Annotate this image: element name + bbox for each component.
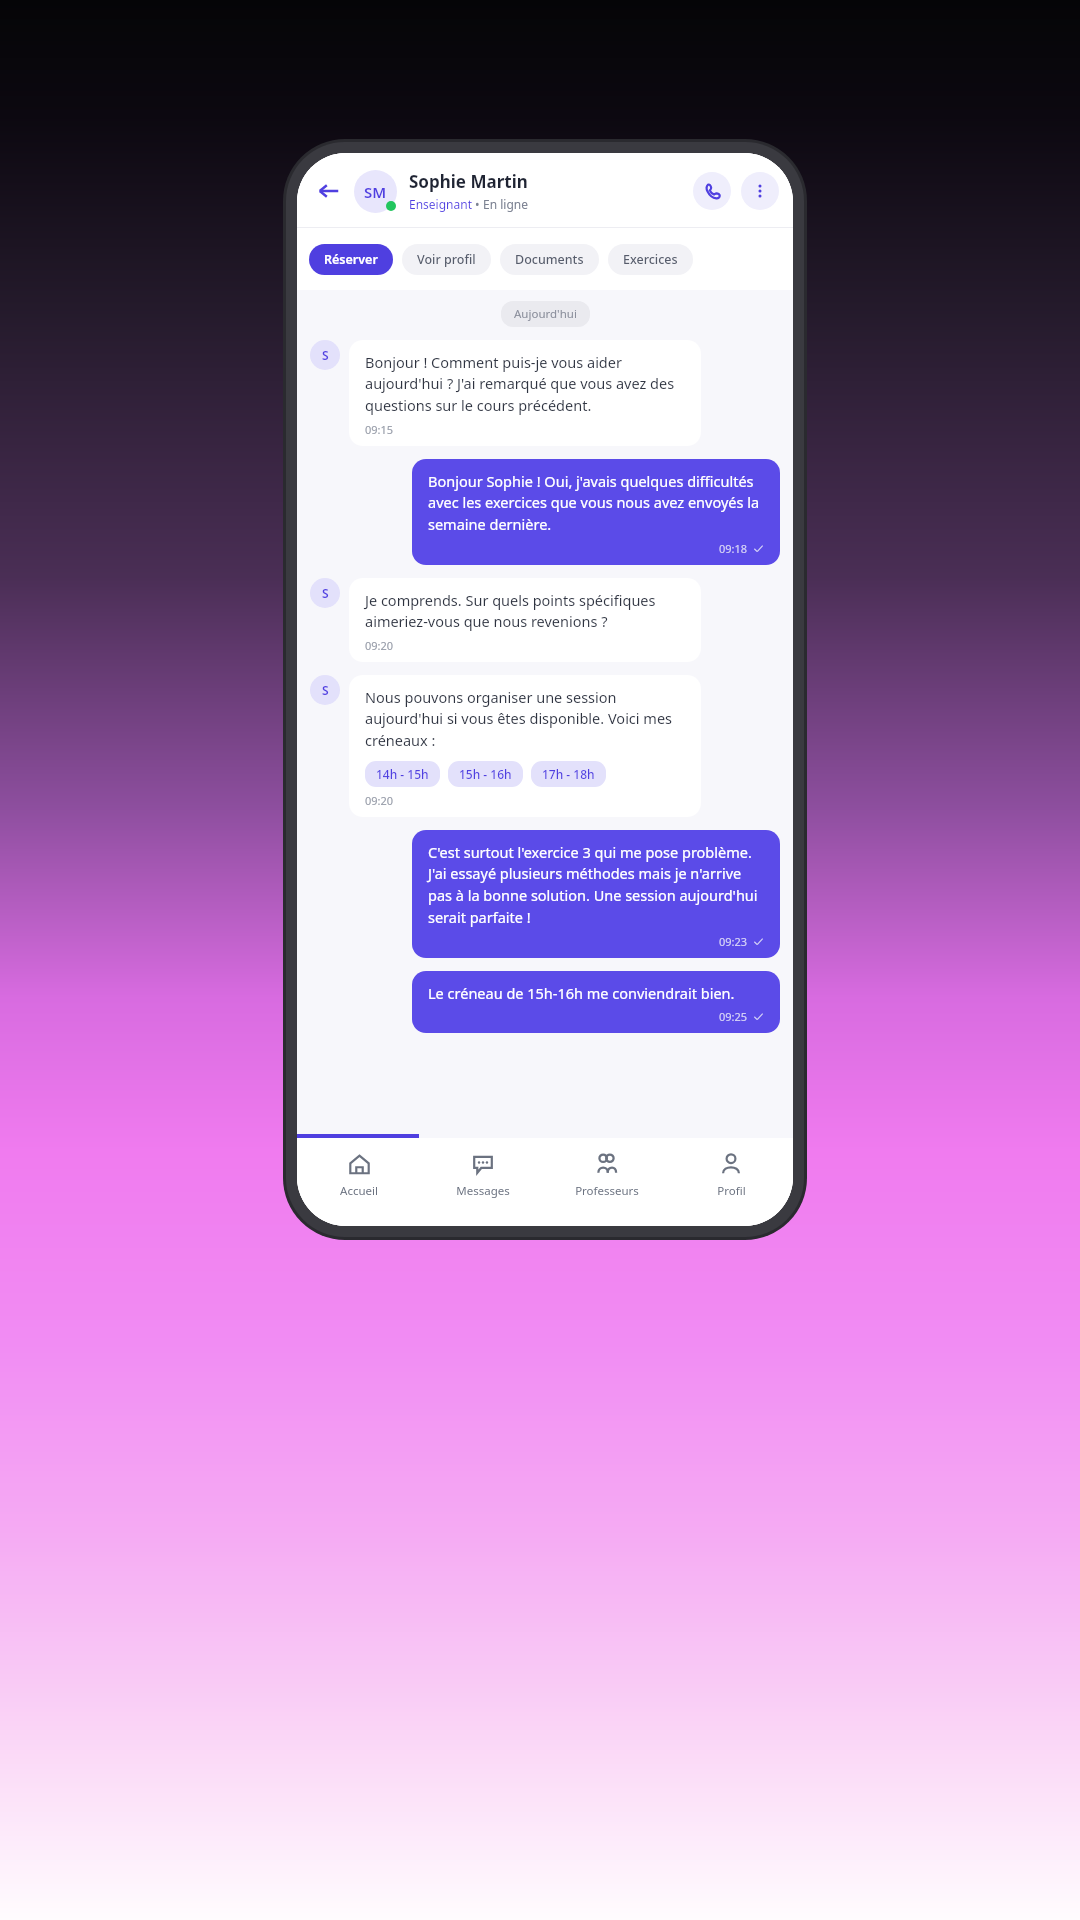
staticText: Aujourd'hui xyxy=(514,306,577,322)
button[interactable]: Professeurs xyxy=(545,1138,669,1226)
staticText: Exercices xyxy=(623,251,678,268)
staticText: S xyxy=(322,585,329,601)
staticText: Bonjour Sophie ! Oui, j'avais quelques d… xyxy=(428,471,764,535)
button[interactable]: Messages xyxy=(421,1138,545,1226)
staticText: Enseignant xyxy=(409,196,472,212)
button[interactable]: Call xyxy=(693,172,731,210)
button[interactable]: Le créneau de 15h-16h me conviendrait bi… xyxy=(412,971,780,1033)
staticText: 09:18 xyxy=(719,541,748,556)
button[interactable]: Voir profil xyxy=(402,244,491,275)
staticText: Voir profil xyxy=(417,251,476,268)
staticText: S xyxy=(322,682,329,698)
staticText: 09:20 xyxy=(365,638,394,653)
button[interactable]: 17h - 18h xyxy=(531,761,606,787)
staticText: 09:20 xyxy=(365,793,394,808)
button[interactable]: 15h - 16h xyxy=(448,761,523,787)
staticText: Je comprends. Sur quels points spécifiqu… xyxy=(365,590,685,632)
button[interactable]: Réserver xyxy=(309,244,393,275)
button[interactable]: Accueil xyxy=(297,1138,421,1226)
staticText: SM xyxy=(364,182,387,202)
button[interactable]: Nous pouvons organiser une session aujou… xyxy=(349,675,701,817)
staticText: En ligne xyxy=(483,196,528,212)
staticText: 14h - 15h xyxy=(376,766,429,782)
button[interactable]: C'est surtout l'exercice 3 qui me pose p… xyxy=(412,830,780,958)
staticText: 09:15 xyxy=(365,422,394,437)
button[interactable]: Je comprends. Sur quels points spécifiqu… xyxy=(349,578,701,662)
button[interactable]: Profil xyxy=(669,1138,793,1226)
button[interactable]: Back xyxy=(311,173,347,209)
staticText: Nous pouvons organiser une session aujou… xyxy=(365,687,685,751)
staticText: 15h - 16h xyxy=(459,766,512,782)
staticText: Accueil xyxy=(340,1183,378,1199)
staticText: • xyxy=(472,196,483,212)
staticText: 09:23 xyxy=(719,934,748,949)
staticText: Messages xyxy=(456,1183,510,1199)
staticText: Documents xyxy=(515,251,584,268)
button[interactable]: More options xyxy=(741,172,779,210)
staticText: Professeurs xyxy=(575,1183,639,1199)
staticText: S xyxy=(322,347,329,363)
staticText: Bonjour ! Comment puis-je vous aider auj… xyxy=(365,352,685,416)
button[interactable]: Bonjour Sophie ! Oui, j'avais quelques d… xyxy=(412,459,780,565)
button[interactable]: Bonjour ! Comment puis-je vous aider auj… xyxy=(349,340,701,446)
staticText: Sophie Martin xyxy=(409,170,528,193)
button[interactable]: 14h - 15h xyxy=(365,761,440,787)
button[interactable]: Exercices xyxy=(608,244,693,275)
button[interactable]: Documents xyxy=(500,244,599,275)
staticText: C'est surtout l'exercice 3 qui me pose p… xyxy=(428,842,764,928)
staticText: Le créneau de 15h-16h me conviendrait bi… xyxy=(428,983,735,1003)
staticText: 17h - 18h xyxy=(542,766,595,782)
staticText: Réserver xyxy=(324,251,378,268)
staticText: 09:25 xyxy=(719,1009,748,1024)
staticText: Profil xyxy=(717,1183,746,1199)
